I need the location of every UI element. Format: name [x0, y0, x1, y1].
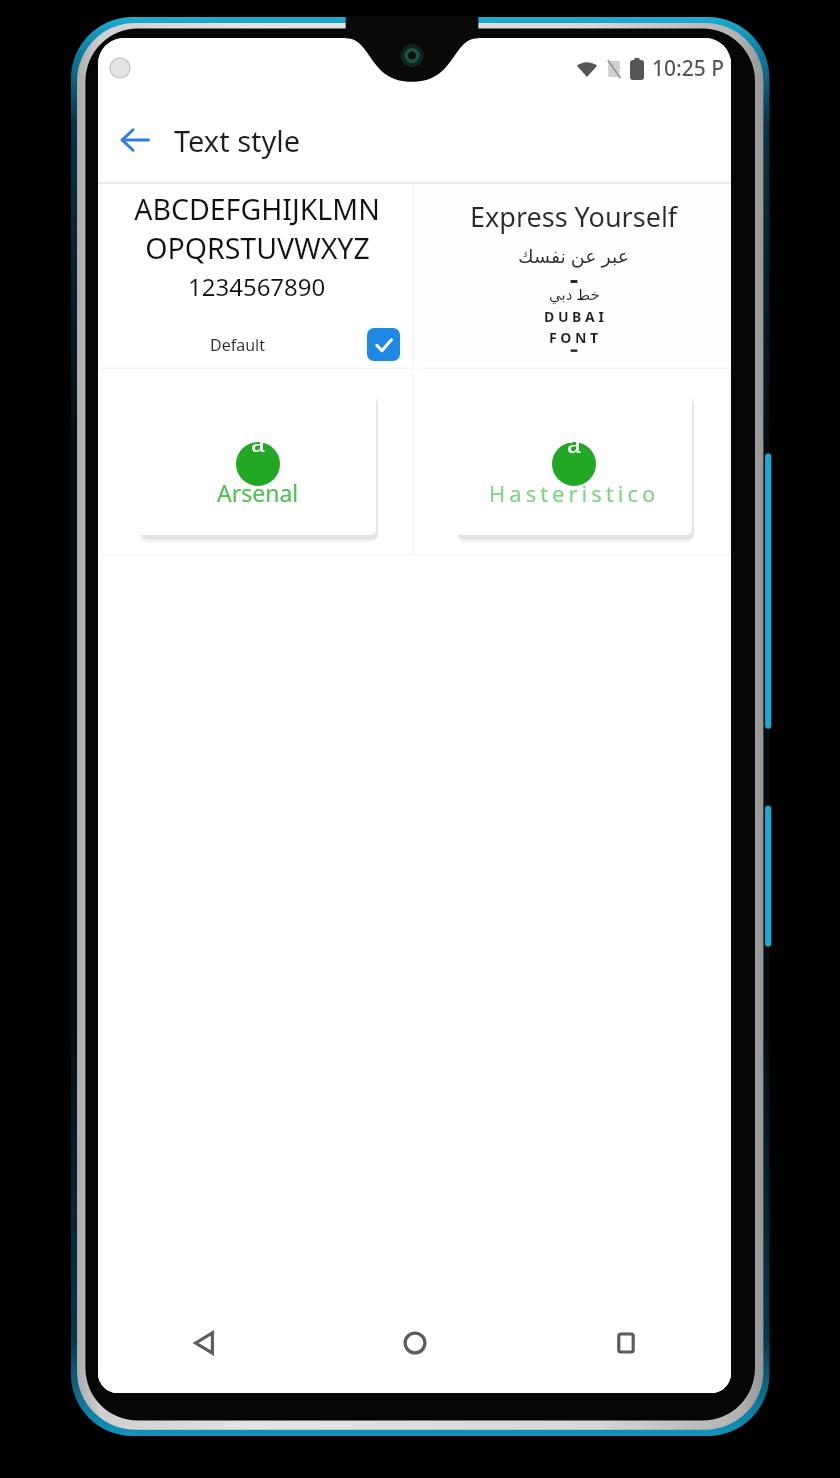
staticText: خط دبي — [549, 284, 600, 304]
staticText: عبر عن نفسك — [518, 243, 630, 269]
staticText: F O N T — [549, 328, 599, 347]
button[interactable]: Express Yourself — [418, 184, 730, 369]
staticText: 1234567890 — [188, 270, 326, 303]
button[interactable]: Home — [309, 1293, 520, 1393]
button[interactable]: a — [100, 371, 414, 556]
staticText: Express Yourself — [470, 198, 678, 235]
button[interactable]: Selected — [367, 328, 400, 361]
staticText: 10:25 P — [652, 54, 725, 83]
button[interactable]: Back — [98, 1293, 309, 1393]
staticText: a — [251, 424, 266, 459]
button[interactable]: a — [418, 371, 730, 556]
staticText: D U B A I — [544, 307, 604, 326]
staticText: OPQRSTUVWXYZ — [145, 229, 370, 268]
button[interactable]: ABCDEFGHIJKLMN — [100, 184, 414, 369]
staticText: Hasteristico — [489, 478, 660, 508]
staticText: Text style — [174, 121, 301, 160]
staticText: Default — [210, 334, 265, 356]
button[interactable]: Recents — [520, 1293, 731, 1393]
button[interactable]: Back — [108, 113, 162, 167]
staticText: ABCDEFGHIJKLMN — [134, 190, 380, 229]
staticText: a — [567, 425, 582, 460]
staticText: Arsenal — [217, 477, 299, 508]
